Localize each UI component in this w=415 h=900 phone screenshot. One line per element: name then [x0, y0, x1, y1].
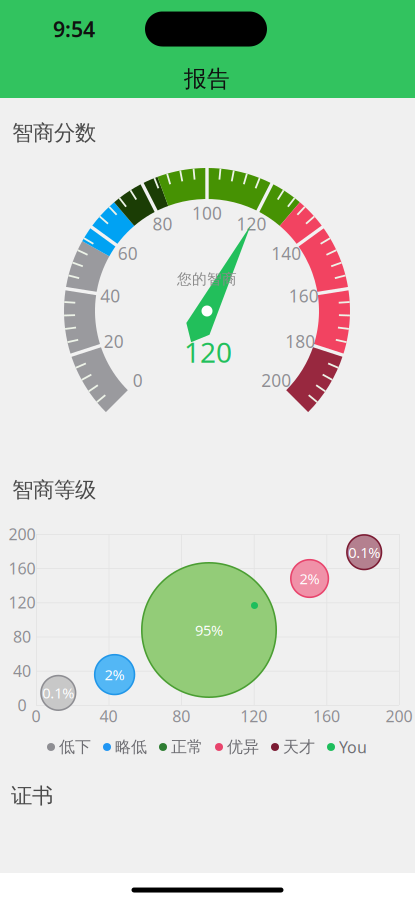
staticText: 20: [104, 330, 124, 353]
staticText: 报告: [184, 65, 230, 93]
staticText: 0: [17, 694, 26, 716]
staticText: 智商等级: [12, 477, 96, 503]
staticText: 0.1%: [348, 542, 380, 562]
staticText: 40: [13, 660, 31, 681]
staticText: 2%: [300, 569, 320, 588]
staticText: 您的智商: [177, 270, 237, 288]
staticText: 80: [152, 212, 172, 235]
staticText: 略低: [115, 737, 147, 757]
staticText: 140: [271, 242, 301, 265]
staticText: 40: [100, 705, 118, 727]
staticText: 证书: [11, 783, 53, 809]
button[interactable]: CERTIFICATE OF IQ TEST: [0, 0, 415, 900]
staticText: You: [339, 736, 367, 758]
staticText: 120: [240, 705, 267, 727]
staticText: 9:54: [53, 15, 95, 43]
staticText: 低下: [59, 737, 91, 757]
staticText: 100: [192, 201, 222, 224]
staticText: 80: [172, 705, 190, 727]
staticText: 0: [31, 705, 40, 727]
staticText: 天才: [283, 737, 315, 757]
staticText: 智商分数: [12, 120, 96, 146]
staticText: 160: [8, 558, 35, 579]
staticText: 120: [236, 212, 266, 235]
staticText: 200: [385, 705, 412, 727]
staticText: 2%: [105, 665, 125, 684]
staticText: 180: [285, 330, 315, 353]
staticText: 60: [118, 242, 138, 265]
staticText: 0: [133, 369, 143, 392]
staticText: 95%: [195, 620, 223, 640]
staticText: 120: [8, 592, 35, 613]
staticText: 200: [261, 369, 291, 392]
staticText: 200: [8, 523, 35, 545]
staticText: 40: [100, 284, 120, 307]
staticText: 120: [184, 333, 232, 371]
staticText: 正常: [171, 737, 203, 757]
staticText: 160: [313, 705, 340, 727]
staticText: 0.1%: [42, 683, 74, 703]
staticText: 160: [289, 284, 319, 307]
staticText: 80: [13, 626, 31, 647]
staticText: 优异: [227, 737, 259, 757]
